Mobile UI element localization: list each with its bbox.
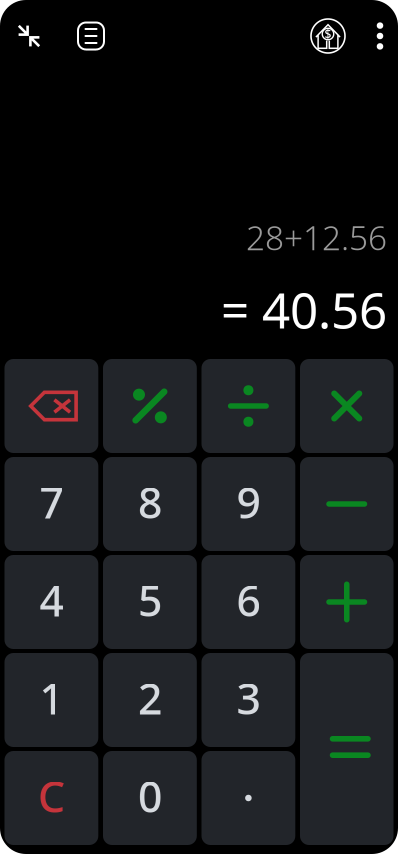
staticText: 7 xyxy=(39,474,63,530)
staticText: = 40.56 xyxy=(221,276,387,342)
staticText: 6 xyxy=(236,572,260,628)
staticText: 1 xyxy=(39,670,63,726)
staticText: 28+12.56 xyxy=(246,215,387,259)
staticText: 8 xyxy=(138,474,162,530)
button[interactable]: Backspace xyxy=(4,359,98,453)
staticText: 5 xyxy=(138,572,162,628)
button[interactable]: Multiply xyxy=(300,359,393,453)
button[interactable]: Collapse xyxy=(8,13,50,59)
staticText: 9 xyxy=(236,474,260,530)
button[interactable]: Minus xyxy=(300,457,393,551)
button[interactable]: Divide xyxy=(201,359,295,453)
button[interactable]: 9 xyxy=(201,457,295,551)
button[interactable]: Decimal point xyxy=(201,751,295,845)
staticText: 2 xyxy=(138,670,162,726)
button[interactable]: 4 xyxy=(4,555,98,649)
button[interactable]: 5 xyxy=(103,555,197,649)
button[interactable]: Percent xyxy=(103,359,197,453)
button[interactable]: 0 xyxy=(103,751,197,845)
button[interactable]: History xyxy=(69,13,113,59)
button[interactable]: 8 xyxy=(103,457,197,551)
button[interactable]: C xyxy=(4,751,98,845)
button[interactable]: Mortgage calculator xyxy=(305,13,351,59)
button[interactable]: 1 xyxy=(4,653,98,747)
button[interactable]: Plus xyxy=(300,555,393,649)
button[interactable]: 3 xyxy=(201,653,295,747)
button[interactable]: 6 xyxy=(201,555,295,649)
staticText: 0 xyxy=(138,768,162,824)
button[interactable]: More options xyxy=(366,13,394,59)
button[interactable]: Equals xyxy=(300,653,393,845)
staticText: 4 xyxy=(39,572,63,628)
staticText: $ xyxy=(324,26,331,42)
staticText: 3 xyxy=(236,670,260,726)
staticText: C xyxy=(38,768,65,824)
button[interactable]: 7 xyxy=(4,457,98,551)
button[interactable]: 2 xyxy=(103,653,197,747)
